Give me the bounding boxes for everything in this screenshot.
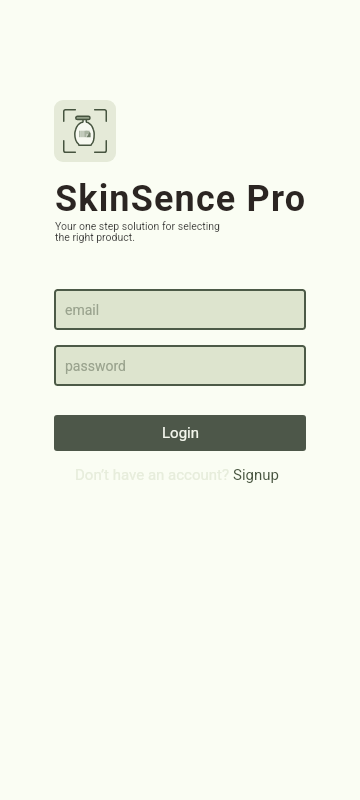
button[interactable]: password [54, 345, 306, 386]
staticText: Don’t have an account? [75, 466, 233, 484]
staticText: Login [162, 424, 199, 442]
other: SkinSence logo [63, 109, 107, 153]
button[interactable]: Signup [233, 466, 279, 484]
staticText: email [65, 302, 100, 318]
button[interactable]: Login [54, 415, 306, 451]
staticText: Your one step solution for selecting the… [55, 220, 221, 244]
staticText: password [65, 358, 126, 374]
button[interactable]: email [54, 289, 306, 330]
staticText: SkinSence Pro [55, 178, 307, 220]
staticText: Signup [233, 466, 279, 484]
